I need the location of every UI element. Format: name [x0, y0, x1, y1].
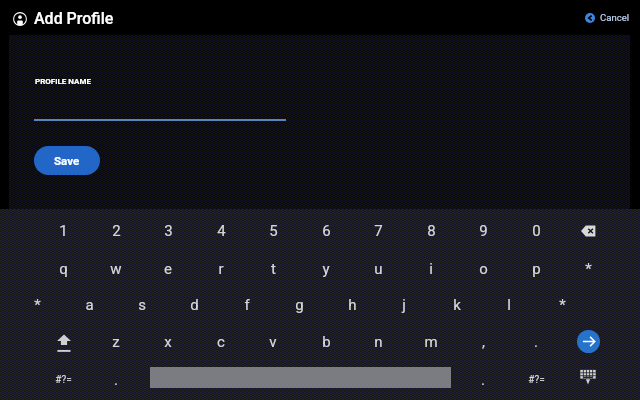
staticText: 5 [269, 222, 278, 240]
button[interactable]: 0 [510, 213, 562, 249]
button[interactable]: q [37, 251, 89, 287]
staticText: . [114, 371, 118, 389]
staticText: b [322, 333, 331, 351]
button[interactable]: Shift [38, 323, 90, 359]
staticText: o [479, 260, 488, 278]
button[interactable]: l [483, 287, 535, 323]
staticText: g [295, 296, 304, 314]
button[interactable]: * [11, 287, 63, 323]
button[interactable]: y [300, 251, 352, 287]
button[interactable]: g [273, 287, 325, 323]
staticText: 3 [164, 222, 173, 240]
button[interactable]: e [142, 251, 194, 287]
button[interactable]: Backspace [564, 213, 616, 249]
button[interactable]: v [247, 324, 299, 360]
button[interactable]: . [510, 324, 562, 360]
staticText: u [374, 260, 383, 278]
staticText: . [534, 333, 538, 351]
staticText: y [322, 260, 330, 278]
button[interactable]: h [326, 287, 378, 323]
staticText: a [85, 296, 94, 314]
button[interactable]: . [90, 362, 142, 398]
button[interactable]: t [247, 251, 299, 287]
staticText: 9 [479, 222, 488, 240]
button[interactable]: c [195, 324, 247, 360]
staticText: e [164, 260, 172, 278]
staticText: . [481, 371, 485, 389]
staticText: , [482, 333, 485, 351]
staticText: 0 [532, 222, 541, 240]
button[interactable]: x [142, 324, 194, 360]
button[interactable]: w [90, 251, 142, 287]
button[interactable]: b [300, 324, 352, 360]
button[interactable]: 4 [195, 213, 247, 249]
button[interactable]: 9 [457, 213, 509, 249]
staticText: v [269, 333, 277, 351]
staticText: s [138, 296, 146, 314]
button[interactable]: f [221, 287, 273, 323]
button[interactable]: n [352, 324, 404, 360]
staticText: m [424, 333, 438, 351]
button[interactable]: u [352, 251, 404, 287]
button[interactable]: Cancel [585, 12, 630, 23]
staticText: x [164, 333, 172, 351]
staticText: Add Profile [34, 9, 114, 28]
staticText: * [559, 296, 566, 314]
button[interactable]: 7 [352, 213, 404, 249]
staticText: n [374, 333, 383, 351]
button[interactable]: , [457, 324, 509, 360]
button[interactable]: #?= [510, 362, 562, 398]
staticText: #?= [55, 374, 72, 386]
button[interactable]: 1 [37, 213, 89, 249]
button[interactable]: Save [34, 146, 100, 175]
button[interactable]: o [457, 251, 509, 287]
staticText: z [112, 333, 120, 351]
button[interactable]: k [431, 287, 483, 323]
button[interactable]: a [63, 287, 115, 323]
button[interactable]: 6 [300, 213, 352, 249]
staticText: c [217, 333, 225, 351]
staticText: 7 [374, 222, 383, 240]
staticText: r [218, 260, 224, 278]
staticText: j [402, 296, 406, 314]
staticText: Save [54, 154, 80, 167]
button[interactable]: 8 [405, 213, 457, 249]
staticText: * [34, 296, 41, 314]
staticText: 2 [112, 222, 121, 240]
staticText: t [271, 260, 276, 278]
staticText: q [59, 260, 68, 278]
button[interactable]: Hide keyboard [562, 357, 614, 393]
button[interactable]: #?= [37, 362, 89, 398]
button[interactable]: * [562, 251, 614, 287]
button[interactable]: * [536, 287, 588, 323]
staticText: l [507, 296, 511, 314]
button[interactable]: . [457, 362, 509, 398]
button[interactable]: m [405, 324, 457, 360]
staticText: f [244, 296, 250, 314]
staticText: 4 [217, 222, 226, 240]
staticText: p [532, 260, 541, 278]
staticText: 6 [322, 222, 331, 240]
button[interactable]: r [195, 251, 247, 287]
staticText: h [348, 296, 357, 314]
staticText: d [190, 296, 199, 314]
button[interactable]: p [510, 251, 562, 287]
button[interactable]: j [378, 287, 430, 323]
button[interactable]: 3 [142, 213, 194, 249]
button[interactable]: d [168, 287, 220, 323]
button[interactable]: Enter [577, 330, 600, 353]
staticText: PROFILE NAME [35, 77, 91, 86]
staticText: 8 [427, 222, 436, 240]
staticText: k [453, 296, 461, 314]
button[interactable]: i [405, 251, 457, 287]
button[interactable]: z [90, 324, 142, 360]
staticText: i [429, 260, 433, 278]
staticText: #?= [528, 374, 545, 386]
button[interactable]: 5 [247, 213, 299, 249]
staticText: Cancel [600, 12, 630, 23]
staticText: 1 [59, 222, 68, 240]
button[interactable]: 2 [90, 213, 142, 249]
staticText: w [110, 260, 122, 278]
button[interactable]: s [116, 287, 168, 323]
